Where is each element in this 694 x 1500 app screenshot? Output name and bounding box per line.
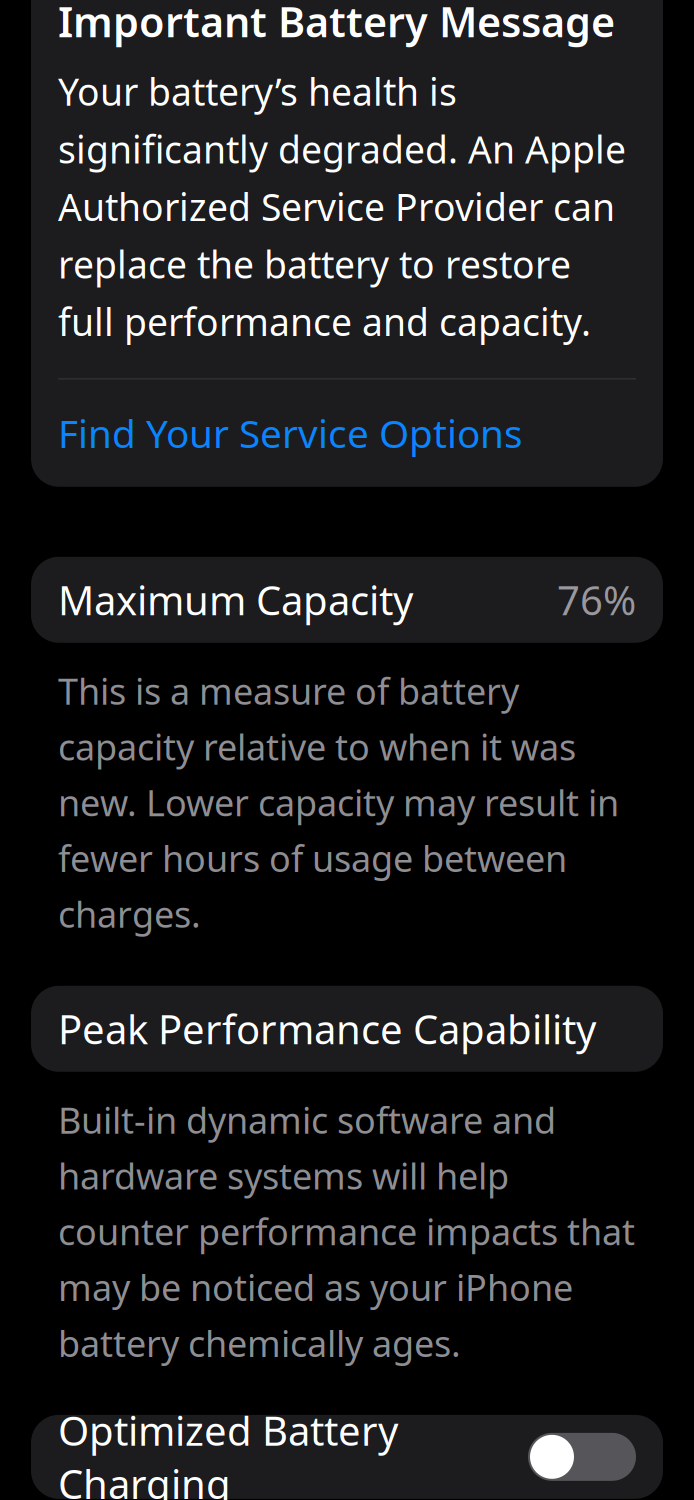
staticText: Find Your Service Options	[58, 407, 523, 459]
staticText: Maximum Capacity	[58, 573, 413, 626]
staticText: Optimized Battery Charging	[58, 1404, 398, 1500]
button[interactable]: Find Your Service Options	[58, 379, 636, 487]
staticText: 76%	[557, 573, 636, 626]
staticText: Peak Performance Capability	[58, 1002, 596, 1055]
button[interactable]: Maximum Capacity	[31, 557, 663, 643]
staticText: Your battery’s health is significantly d…	[58, 66, 626, 346]
staticText: Important Battery Message	[58, 0, 615, 48]
staticText: This is a measure of battery capacity re…	[58, 667, 619, 938]
button[interactable]: Optimized Battery Charging	[31, 1415, 663, 1499]
staticText: Built-in dynamic software and hardware s…	[58, 1096, 635, 1367]
button[interactable]: Peak Performance Capability	[31, 986, 663, 1072]
